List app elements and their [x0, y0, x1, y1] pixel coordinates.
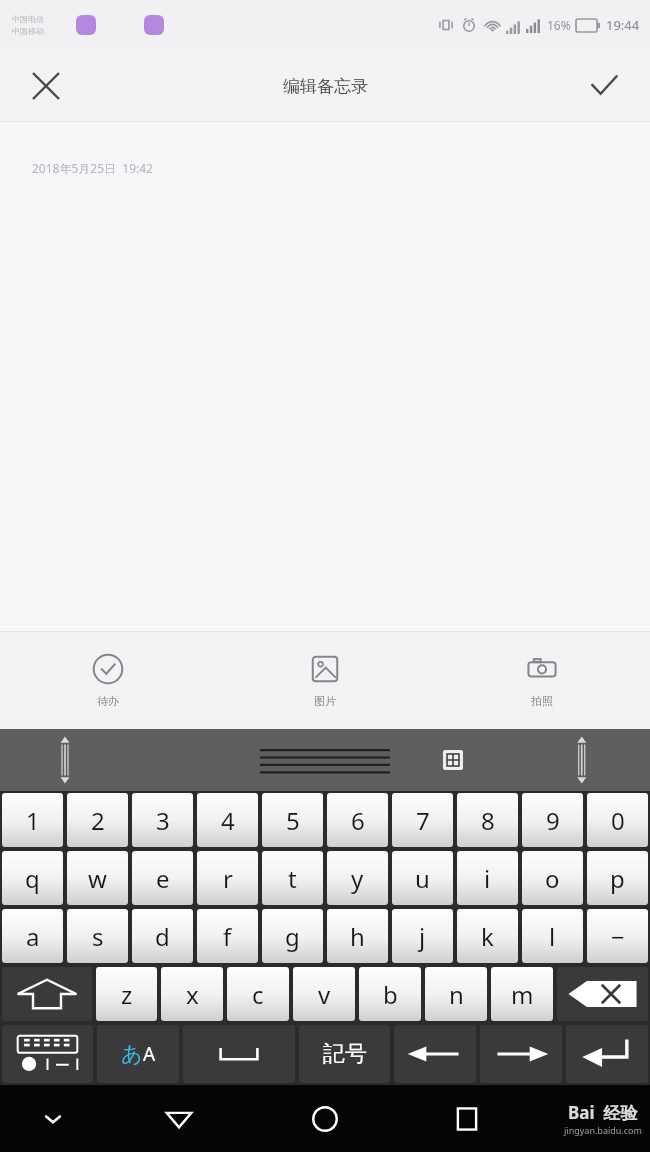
staticText: 16%: [547, 17, 571, 33]
button[interactable]: r: [197, 851, 258, 905]
button[interactable]: o: [522, 851, 583, 905]
staticText: 19:44: [606, 16, 640, 34]
staticText: あ: [121, 1041, 143, 1067]
button[interactable]: j: [392, 909, 453, 963]
staticText: 4: [221, 804, 235, 837]
staticText: g: [285, 920, 300, 953]
staticText: q: [25, 862, 40, 895]
staticText: k: [481, 920, 494, 953]
button[interactable]: Keyboard: [2, 1025, 93, 1083]
button[interactable]: h: [327, 909, 388, 963]
button[interactable]: i: [457, 851, 518, 905]
button[interactable]: a: [2, 909, 63, 963]
staticText: 图片: [314, 694, 336, 708]
button[interactable]: n: [425, 967, 487, 1021]
button[interactable]: 图片: [216, 631, 433, 729]
button[interactable]: 8: [457, 793, 518, 847]
button[interactable]: c: [227, 967, 289, 1021]
staticText: l: [549, 920, 556, 953]
button[interactable]: f: [197, 909, 258, 963]
button[interactable]: 0: [587, 793, 648, 847]
staticText: u: [415, 862, 430, 895]
staticText: r: [223, 862, 233, 895]
button[interactable]: Settings: [443, 750, 463, 770]
staticText: d: [155, 920, 170, 953]
button[interactable]: Home: [298, 1092, 352, 1146]
button[interactable]: v: [293, 967, 355, 1021]
button[interactable]: k: [457, 909, 518, 963]
button[interactable]: Back: [152, 1092, 206, 1146]
button[interactable]: y: [327, 851, 388, 905]
staticText: 9: [546, 804, 560, 837]
staticText: 6: [351, 804, 365, 837]
staticText: m: [511, 978, 534, 1011]
staticText: jingyan.baidu.com: [564, 1124, 642, 1136]
button[interactable]: m: [491, 967, 553, 1021]
staticText: h: [350, 920, 365, 953]
button[interactable]: 1: [2, 793, 63, 847]
staticText: c: [252, 978, 264, 1011]
button[interactable]: Space: [183, 1025, 295, 1083]
button[interactable]: Backspace: [557, 967, 648, 1021]
button[interactable]: Hide keyboard: [30, 1096, 76, 1142]
button[interactable]: 3: [132, 793, 193, 847]
staticText: 8: [481, 804, 495, 837]
button[interactable]: z: [96, 967, 157, 1021]
staticText: 2: [91, 804, 105, 837]
staticText: −: [611, 920, 625, 953]
staticText: 0: [611, 804, 625, 837]
staticText: 1: [26, 804, 40, 837]
button[interactable]: u: [392, 851, 453, 905]
button[interactable]: Save: [576, 58, 632, 114]
button[interactable]: l: [522, 909, 583, 963]
button[interactable]: Shift: [2, 967, 92, 1021]
button[interactable]: x: [161, 967, 223, 1021]
button[interactable]: −: [587, 909, 648, 963]
button[interactable]: w: [67, 851, 128, 905]
button[interactable]: q: [2, 851, 63, 905]
button[interactable]: 5: [262, 793, 323, 847]
staticText: w: [88, 862, 107, 895]
button[interactable]: あ: [97, 1025, 179, 1083]
button[interactable]: t: [262, 851, 323, 905]
button[interactable]: 4: [197, 793, 258, 847]
staticText: 待办: [97, 694, 119, 708]
button[interactable]: Right: [480, 1025, 562, 1083]
staticText: Bai 经验: [568, 1101, 638, 1124]
staticText: i: [484, 862, 491, 895]
button[interactable]: e: [132, 851, 193, 905]
button[interactable]: g: [262, 909, 323, 963]
button[interactable]: 待办: [0, 631, 216, 729]
button[interactable]: 2: [67, 793, 128, 847]
staticText: p: [610, 862, 625, 895]
staticText: 中国移动: [12, 26, 44, 36]
staticText: v: [318, 978, 331, 1011]
staticText: x: [186, 978, 199, 1011]
staticText: 3: [156, 804, 170, 837]
staticText: 编辑备忘录: [283, 76, 368, 97]
staticText: b: [383, 978, 398, 1011]
staticText: a: [26, 920, 40, 953]
button[interactable]: 7: [392, 793, 453, 847]
button[interactable]: Left: [394, 1025, 476, 1083]
button[interactable]: 6: [327, 793, 388, 847]
button[interactable]: p: [587, 851, 648, 905]
staticText: n: [449, 978, 464, 1011]
staticText: t: [288, 862, 297, 895]
staticText: o: [545, 862, 560, 895]
button[interactable]: d: [132, 909, 193, 963]
button[interactable]: 拍照: [433, 631, 650, 729]
button[interactable]: Recents: [440, 1092, 494, 1146]
staticText: 拍照: [531, 694, 553, 708]
staticText: 5: [286, 804, 300, 837]
staticText: s: [92, 920, 104, 953]
button[interactable]: Close: [18, 58, 74, 114]
staticText: 記号: [323, 1040, 367, 1068]
button[interactable]: s: [67, 909, 128, 963]
button[interactable]: b: [359, 967, 421, 1021]
button[interactable]: 9: [522, 793, 583, 847]
button[interactable]: Enter: [566, 1025, 648, 1083]
staticText: z: [121, 978, 133, 1011]
button[interactable]: 記号: [299, 1025, 390, 1083]
